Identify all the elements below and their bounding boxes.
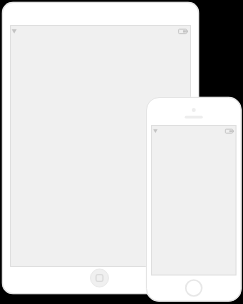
button[interactable]: Phone device preview [146,97,241,302]
button[interactable]: Tablet device preview [2,2,199,294]
